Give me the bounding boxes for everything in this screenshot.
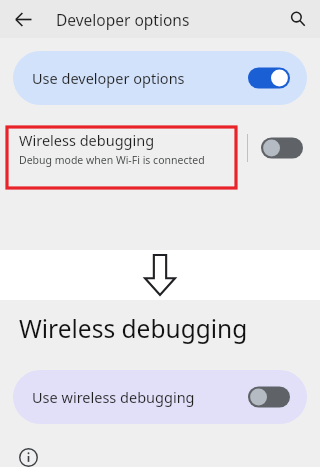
staticText: Wireless debugging (19, 312, 248, 345)
staticText: Wireless debugging (19, 130, 155, 150)
button[interactable]: Toggle off (261, 136, 303, 160)
staticText: Debug mode when Wi-Fi is connected (19, 153, 205, 167)
button[interactable]: Toggle off (248, 385, 290, 409)
button[interactable]: Toggle on (248, 66, 290, 90)
other: Information (18, 447, 39, 467)
button[interactable]: Back (6, 2, 40, 36)
button[interactable]: Use wireless debugging (13, 370, 307, 424)
staticText: Use wireless debugging (32, 387, 195, 407)
button[interactable]: Use developer options (13, 51, 307, 105)
staticText: Developer options (56, 9, 190, 30)
staticText: Use developer options (32, 68, 185, 88)
button[interactable]: Wireless debugging (0, 118, 320, 178)
button[interactable]: Search (282, 3, 314, 35)
